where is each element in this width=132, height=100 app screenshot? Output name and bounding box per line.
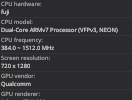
staticText: GPU vendor:: [1, 72, 36, 80]
staticText: Dual-Core ARMv7 Processor (VFPv3, NEON): [1, 26, 118, 34]
button[interactable]: CPU frequency:: [0, 36, 132, 54]
staticText: Qualcomm: [1, 80, 31, 88]
button[interactable]: CPU hardware:: [0, 0, 132, 18]
button[interactable]: GPU vendor:: [0, 72, 132, 90]
staticText: fuji: [1, 8, 10, 16]
button[interactable]: GPU renderer:: [0, 90, 132, 100]
staticText: Adreno (TM) 320: [1, 98, 46, 100]
button[interactable]: Screen resolution:: [0, 54, 132, 72]
staticText: 720 x 1280: [1, 62, 31, 70]
staticText: CPU model:: [1, 18, 33, 26]
staticText: Screen resolution:: [1, 54, 51, 62]
staticText: GPU renderer:: [1, 90, 40, 98]
staticText: CPU hardware:: [1, 0, 42, 8]
staticText: 384.0 ~ 1512.0 MHz: [1, 44, 55, 52]
button[interactable]: CPU model:: [0, 18, 132, 36]
staticText: CPU frequency:: [1, 36, 43, 44]
